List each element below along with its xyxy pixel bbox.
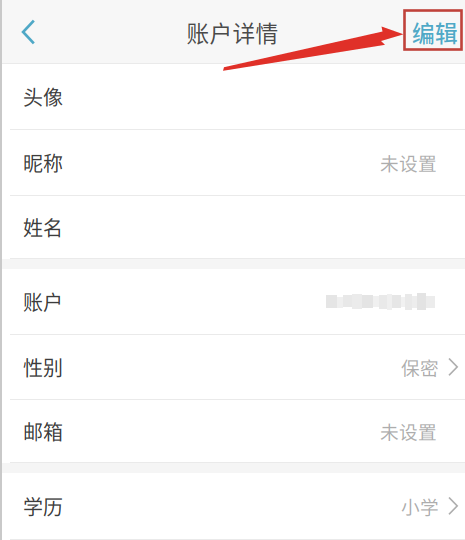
staticText: 学历 [23, 491, 63, 520]
button[interactable]: 账户 [0, 269, 465, 335]
button[interactable]: 姓名 [0, 196, 465, 259]
button[interactable]: 编辑 [412, 0, 465, 63]
staticText: 邮箱 [23, 416, 63, 445]
staticText: 头像 [23, 82, 63, 111]
button[interactable]: 邮箱 [0, 400, 465, 463]
staticText: 性别 [23, 352, 63, 381]
staticText: 账户详情 [186, 16, 278, 48]
button[interactable]: 性别 [0, 335, 465, 400]
staticText: 姓名 [23, 212, 63, 241]
button[interactable]: 学历 [0, 473, 465, 540]
button[interactable]: Back [0, 0, 42, 63]
staticText: 账户 [23, 287, 63, 316]
staticText: 昵称 [23, 148, 63, 177]
staticText: 编辑 [412, 16, 458, 48]
staticText: 未设置 [380, 417, 437, 444]
staticText: 保密 [401, 353, 439, 380]
button[interactable]: 昵称 [0, 130, 465, 196]
staticText: 未设置 [380, 149, 437, 176]
button[interactable]: 头像 [0, 64, 465, 130]
staticText: 小学 [401, 492, 439, 519]
